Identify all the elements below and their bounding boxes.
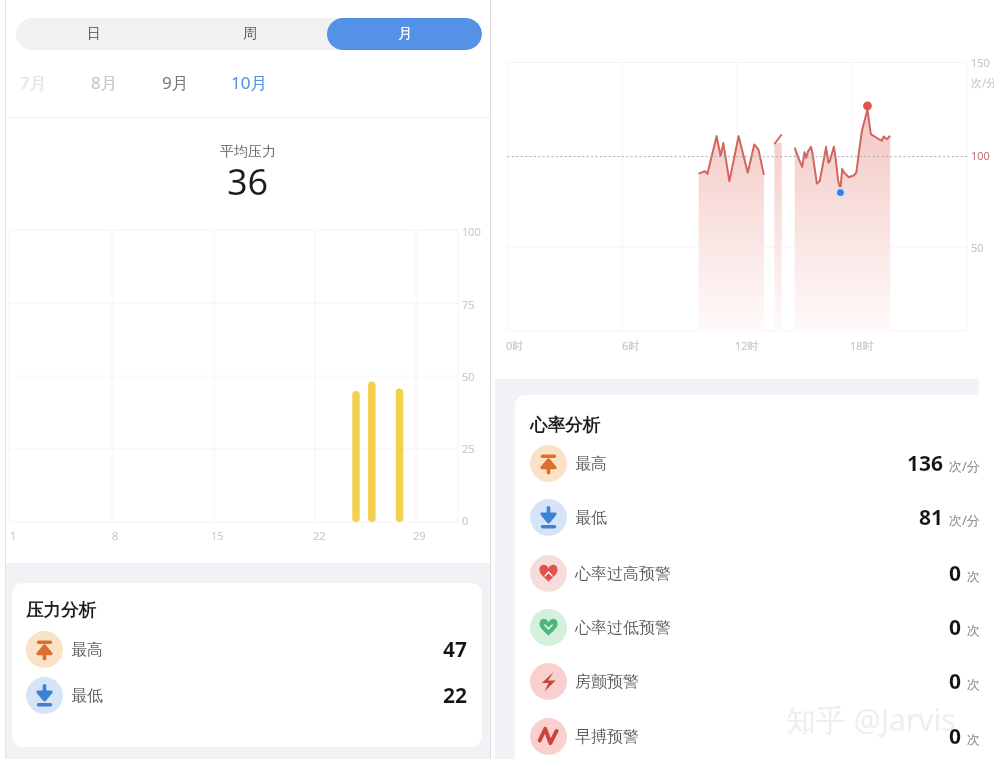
staticText: 136: [907, 449, 944, 478]
button[interactable]: 心率过低预警: [515, 609, 989, 646]
staticText: 0: [949, 667, 962, 696]
staticText: 最高: [575, 454, 607, 474]
staticText: 18时: [850, 338, 874, 353]
staticText: 15: [211, 528, 224, 543]
staticText: 最低: [71, 686, 103, 706]
staticText: 25: [462, 441, 475, 456]
staticText: 100: [971, 148, 990, 163]
staticText: 次/分: [949, 511, 980, 529]
staticText: 0: [949, 613, 962, 642]
staticText: 次: [967, 568, 980, 584]
staticText: 次: [967, 731, 980, 747]
staticText: 7月: [20, 71, 47, 94]
staticText: 75: [462, 297, 475, 312]
staticText: 22: [443, 681, 468, 710]
button[interactable]: 8月: [69, 62, 139, 102]
staticText: 12时: [735, 338, 759, 353]
button[interactable]: 心率过高预警: [515, 555, 989, 592]
staticText: 50: [971, 240, 984, 255]
staticText: 9月: [162, 71, 189, 94]
button[interactable]: 最低: [515, 499, 989, 536]
button[interactable]: 最高: [515, 445, 989, 482]
staticText: 早搏预警: [575, 727, 639, 747]
staticText: 知乎 @Jarvis: [786, 699, 956, 740]
button[interactable]: 月: [327, 18, 482, 50]
staticText: 心率分析: [530, 414, 600, 436]
button[interactable]: 最低: [12, 677, 482, 714]
staticText: 房颤预警: [575, 672, 639, 692]
staticText: 100: [462, 224, 481, 239]
staticText: 压力分析: [26, 599, 96, 621]
button[interactable]: 早搏预警: [515, 718, 989, 755]
staticText: 10月: [231, 71, 268, 94]
button[interactable]: 周: [172, 18, 327, 50]
button[interactable]: 10月: [214, 62, 284, 102]
staticText: 0: [949, 722, 962, 751]
button[interactable]: 最高: [12, 631, 482, 668]
staticText: 8月: [91, 71, 118, 94]
staticText: 日: [87, 25, 101, 43]
staticText: 平均压力: [220, 143, 276, 161]
staticText: 29: [413, 528, 426, 543]
staticText: 50: [462, 369, 475, 384]
staticText: 22: [313, 528, 326, 543]
staticText: 8: [112, 528, 119, 543]
staticText: 心率过高预警: [575, 564, 671, 584]
staticText: 36: [227, 157, 269, 206]
staticText: 0时: [506, 338, 524, 353]
staticText: 6时: [622, 338, 640, 353]
staticText: 心率过低预警: [575, 618, 671, 638]
button[interactable]: 房颤预警: [515, 663, 989, 700]
staticText: 次/分: [949, 457, 980, 475]
staticText: 最高: [71, 640, 103, 660]
staticText: 周: [243, 25, 257, 43]
staticText: 次: [967, 676, 980, 692]
staticText: 150: [971, 55, 990, 70]
staticText: 月: [398, 25, 412, 43]
staticText: 最低: [575, 508, 607, 528]
button[interactable]: 9月: [140, 62, 210, 102]
staticText: 0: [462, 513, 469, 528]
staticText: 次: [967, 622, 980, 638]
button[interactable]: 7月: [0, 62, 68, 102]
staticText: 1: [10, 528, 17, 543]
staticText: 次/分: [971, 75, 994, 90]
staticText: 81: [919, 503, 944, 532]
staticText: 0: [949, 559, 962, 588]
button[interactable]: 日: [16, 18, 172, 50]
staticText: 47: [443, 635, 468, 664]
